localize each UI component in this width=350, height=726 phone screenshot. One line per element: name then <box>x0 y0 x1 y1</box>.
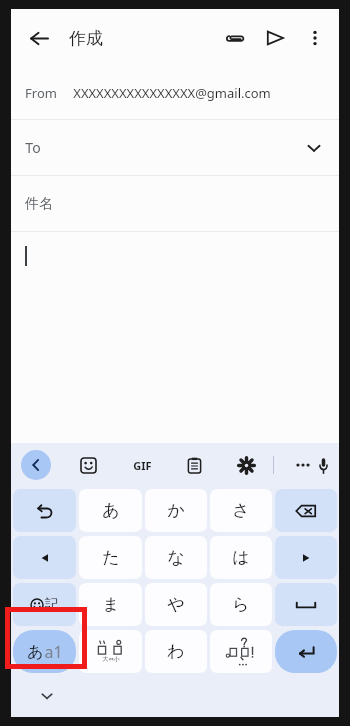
staticText: た <box>102 547 120 568</box>
button[interactable]: Send <box>255 18 295 58</box>
staticText: な <box>167 547 185 568</box>
button[interactable]: さ <box>210 489 272 532</box>
button[interactable]: 大⇔小 <box>79 630 142 673</box>
button[interactable]: More options <box>295 18 335 58</box>
staticText: ま <box>102 594 120 615</box>
button[interactable] <box>210 630 272 673</box>
button[interactable]: From <box>11 67 339 119</box>
button[interactable]: Settings <box>231 450 261 480</box>
button[interactable]: Backspace <box>275 489 337 532</box>
staticText: わ <box>167 641 185 662</box>
button[interactable]: Stickers <box>73 450 103 480</box>
button[interactable]: Back <box>21 450 51 480</box>
button[interactable]: あ <box>79 489 142 532</box>
staticText: か <box>167 500 185 521</box>
button[interactable]: Voice input <box>318 450 329 480</box>
staticText: は <box>232 547 250 568</box>
staticText: 記 <box>45 596 59 614</box>
staticText: GIF <box>133 458 152 473</box>
button[interactable]: Expand recipients <box>299 133 329 163</box>
button[interactable]: 記 <box>13 583 76 626</box>
button[interactable]: な <box>145 536 207 579</box>
button[interactable]: Hide keyboard <box>33 682 61 710</box>
staticText: To <box>25 138 41 157</box>
button[interactable]: わ <box>145 630 207 673</box>
staticText: ら <box>232 594 250 615</box>
button[interactable]: More <box>288 450 318 480</box>
staticText: 件名 <box>25 195 53 213</box>
button[interactable]: Cursor left <box>13 536 76 579</box>
button[interactable]: Cursor right <box>275 536 337 579</box>
button[interactable]: GIF <box>127 450 157 480</box>
button[interactable]: Attach <box>215 18 255 58</box>
button[interactable]: 件名 <box>11 176 339 231</box>
button[interactable]: Enter <box>275 630 337 673</box>
staticText: 大⇔小 <box>102 655 120 663</box>
staticText: 作成 <box>69 28 103 49</box>
staticText: XXXXXXXXXXXXXXXX@gmail.com <box>73 84 271 102</box>
staticText: あ <box>102 500 120 521</box>
button[interactable]: や <box>145 583 207 626</box>
staticText: あ <box>27 642 44 662</box>
staticText: や <box>167 594 185 615</box>
button[interactable]: Space <box>275 583 337 626</box>
button[interactable]: あ <box>13 630 76 673</box>
button[interactable]: は <box>210 536 272 579</box>
staticText: さ <box>232 500 250 521</box>
button[interactable]: た <box>79 536 142 579</box>
button[interactable]: Back <box>19 18 59 58</box>
button[interactable]: か <box>145 489 207 532</box>
button[interactable]: Clipboard <box>179 450 209 480</box>
button[interactable]: ら <box>210 583 272 626</box>
button[interactable]: Undo <box>13 489 76 532</box>
staticText: From <box>25 84 57 102</box>
button[interactable] <box>11 232 339 443</box>
button[interactable]: To <box>11 120 339 175</box>
staticText: a1 <box>44 641 63 663</box>
button[interactable]: ま <box>79 583 142 626</box>
